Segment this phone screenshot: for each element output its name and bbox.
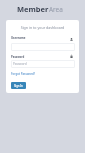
staticText: Sign In — [14, 84, 23, 88]
other: User account — [70, 38, 73, 41]
button[interactable]: Password — [11, 60, 75, 68]
staticText: Password — [11, 55, 25, 59]
other: Password lock — [70, 55, 73, 58]
button[interactable] — [11, 43, 75, 51]
staticText: Member — [17, 4, 49, 14]
staticText: Username — [11, 36, 26, 40]
staticText: Sign in to your dashboard — [6, 25, 79, 30]
staticText: Password — [13, 62, 27, 66]
button[interactable]: Sign In — [11, 82, 26, 89]
button[interactable]: Forgot Password? — [11, 72, 36, 76]
staticText: Area — [49, 5, 63, 14]
